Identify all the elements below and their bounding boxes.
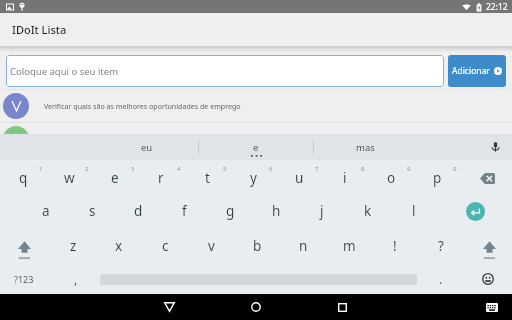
staticText: 4 — [177, 165, 181, 173]
staticText: . — [439, 271, 443, 287]
button[interactable]: b — [234, 230, 280, 262]
button[interactable]: . — [418, 263, 464, 295]
button[interactable]: w — [46, 162, 92, 194]
button[interactable]: ?123 — [1, 263, 47, 295]
staticText: s — [89, 202, 96, 220]
button[interactable]: Outra tarefa da lista — [0, 123, 512, 155]
button[interactable]: ? — [418, 230, 464, 262]
staticText: Adicionar — [452, 65, 490, 77]
button[interactable]: y — [230, 162, 276, 194]
button[interactable]: Verificar quais são as melhores oportuni… — [0, 90, 512, 122]
staticText: z — [70, 237, 77, 255]
staticText: j — [320, 202, 324, 220]
staticText: ! — [393, 237, 397, 255]
staticText: 6 — [269, 165, 273, 173]
staticText: d — [134, 202, 143, 220]
staticText: e — [111, 169, 119, 187]
staticText: o — [387, 169, 396, 187]
button[interactable]: Adicionar — [448, 55, 506, 87]
staticText: 9 — [407, 165, 411, 173]
button[interactable]: x — [96, 230, 142, 262]
staticText: e — [253, 141, 259, 154]
staticText: 7 — [315, 165, 319, 173]
button[interactable]: t — [184, 162, 230, 194]
button[interactable]: d — [115, 195, 161, 227]
staticText: q — [19, 169, 28, 187]
staticText: m — [343, 237, 356, 255]
button[interactable]: l — [391, 195, 437, 227]
staticText: eu — [141, 141, 153, 154]
staticText: h — [272, 202, 281, 220]
staticText: i — [343, 169, 347, 187]
button[interactable]: Shift — [466, 230, 512, 262]
button[interactable]: k — [345, 195, 391, 227]
button[interactable]: Voice input — [481, 134, 509, 160]
button[interactable]: z — [50, 230, 96, 262]
staticText: t — [205, 169, 210, 187]
button[interactable]: u — [276, 162, 322, 194]
button[interactable]: j — [299, 195, 345, 227]
staticText: 2 — [85, 165, 89, 173]
staticText: b — [253, 237, 262, 255]
staticText: 0 — [453, 165, 457, 173]
button[interactable]: Shift — [1, 230, 47, 262]
staticText: 3 — [131, 165, 135, 173]
staticText: l — [412, 202, 416, 220]
button[interactable]: ! — [372, 230, 418, 262]
button[interactable]: h — [253, 195, 299, 227]
button[interactable]: f — [161, 195, 207, 227]
staticText: k — [364, 202, 372, 220]
staticText: IDoIt Lista — [12, 22, 67, 37]
button[interactable]: s — [69, 195, 115, 227]
staticText: , — [74, 271, 78, 287]
staticText: 1 — [39, 165, 43, 173]
button[interactable]: e — [199, 134, 313, 160]
staticText: p — [433, 169, 442, 187]
button[interactable]: , — [53, 263, 99, 295]
staticText: w — [64, 169, 75, 187]
button[interactable]: Enter — [466, 202, 485, 221]
staticText: Verificar quais são as melhores oportuni… — [44, 101, 241, 111]
button[interactable]: c — [142, 230, 188, 262]
button[interactable]: o — [368, 162, 414, 194]
button[interactable]: Emoji — [466, 263, 510, 295]
button[interactable]: eu — [90, 134, 204, 160]
button[interactable]: q — [0, 162, 46, 194]
staticText: 8 — [361, 165, 365, 173]
button[interactable]: a — [23, 195, 69, 227]
staticText: Coloque aqui o seu item — [10, 65, 119, 78]
button[interactable]: n — [280, 230, 326, 262]
button[interactable]: mas — [311, 134, 419, 160]
button[interactable]: r — [138, 162, 184, 194]
button[interactable]: e — [92, 162, 138, 194]
button[interactable]: m — [326, 230, 372, 262]
staticText: ? — [438, 237, 444, 255]
staticText: u — [295, 169, 304, 187]
staticText: f — [182, 202, 187, 220]
button[interactable]: Coloque aqui o seu item — [6, 55, 444, 87]
button[interactable]: p — [414, 162, 460, 194]
button[interactable]: Home — [243, 294, 269, 320]
staticText: mas — [356, 141, 375, 154]
staticText: 5 — [223, 165, 227, 173]
other: Keyboard shown — [479, 294, 505, 320]
button[interactable]: Recents — [329, 294, 355, 320]
button[interactable]: Backspace — [465, 162, 509, 194]
staticText: 22:12 — [486, 1, 508, 13]
staticText: r — [158, 169, 164, 187]
staticText: g — [226, 202, 235, 220]
button[interactable]: Back — [156, 294, 182, 320]
button[interactable]: g — [207, 195, 253, 227]
staticText: ?123 — [14, 273, 34, 285]
staticText: c — [162, 237, 169, 255]
button[interactable]: v — [188, 230, 234, 262]
staticText: y — [250, 169, 257, 187]
button[interactable]: i — [322, 162, 368, 194]
staticText: v — [208, 237, 215, 255]
staticText: a — [42, 202, 50, 220]
staticText: x — [115, 237, 123, 255]
staticText: n — [299, 237, 308, 255]
